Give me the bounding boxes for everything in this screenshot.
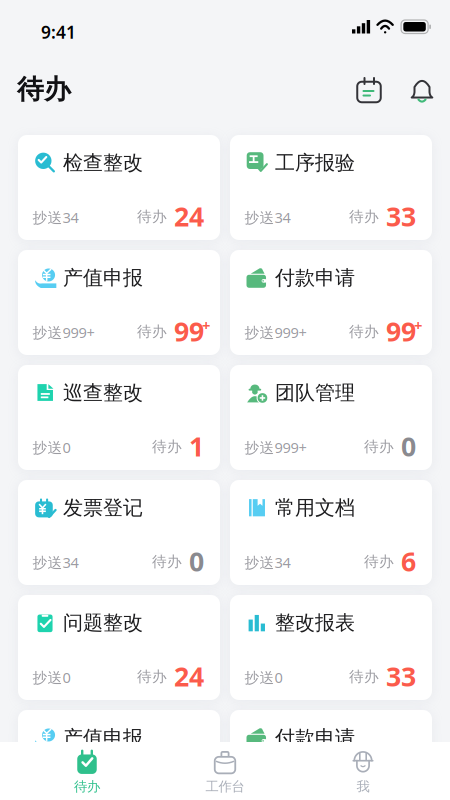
button[interactable]: 产值申报 (18, 710, 220, 800)
staticText: + (202, 775, 210, 795)
staticText: 抄送34 (32, 207, 78, 227)
staticText: 待办 (17, 73, 71, 106)
button[interactable]: 团队管理 (230, 365, 432, 470)
staticText: 1 (189, 428, 204, 464)
staticText: 待办 (137, 322, 167, 340)
staticText: 待办 (152, 552, 182, 570)
staticText: + (414, 315, 422, 335)
staticText: 巡查整改 (63, 380, 143, 405)
staticText: 团队管理 (275, 380, 355, 405)
staticText: 工作台 (205, 778, 244, 795)
staticText: 抄送34 (32, 552, 78, 572)
staticText: 检查整改 (63, 150, 143, 175)
button[interactable]: 通知 (405, 73, 439, 107)
staticText: 33 (386, 658, 416, 694)
button[interactable]: 发票登记 (18, 480, 220, 585)
button[interactable]: 付款申请 (230, 710, 432, 800)
staticText: 抄送0 (32, 437, 70, 457)
staticText: 待办 (349, 322, 379, 340)
button[interactable]: 待办 (18, 742, 156, 800)
staticText: 抄送34 (244, 552, 290, 572)
staticText: 整改报表 (275, 610, 355, 635)
staticText: 99 (174, 313, 204, 349)
button[interactable]: 检查整改 (18, 135, 220, 240)
button[interactable]: 问题整改 (18, 595, 220, 700)
staticText: 抄送34 (244, 207, 290, 227)
staticText: + (202, 315, 210, 335)
staticText: 发票登记 (63, 495, 143, 520)
staticText: 33 (386, 198, 416, 234)
staticText: 待办 (152, 437, 182, 455)
staticText: 待办 (74, 778, 100, 795)
staticText: 工序报验 (275, 150, 355, 175)
button[interactable]: 产值申报 (18, 250, 220, 355)
staticText: 待办 (364, 437, 394, 455)
staticText: 付款申请 (275, 725, 355, 750)
button[interactable]: 巡查整改 (18, 365, 220, 470)
staticText: 产值申报 (63, 265, 143, 290)
staticText: 抄送999+ (244, 322, 306, 342)
button[interactable]: 付款申请 (230, 250, 432, 355)
staticText: 抄送0 (32, 667, 70, 687)
staticText: 抄送0 (244, 667, 282, 687)
staticText: 待办 (364, 552, 394, 570)
button[interactable]: 整改报表 (230, 595, 432, 700)
button[interactable]: 工序报验 (230, 135, 432, 240)
staticText: 待办 (349, 782, 379, 800)
staticText: 我 (356, 778, 369, 795)
staticText: 待办 (349, 207, 379, 225)
staticText: 抄送999+ (244, 437, 306, 457)
staticText: 问题整改 (63, 610, 143, 635)
button[interactable]: 我 (294, 742, 432, 800)
button[interactable]: 日程 (352, 73, 386, 107)
staticText: 99 (386, 313, 416, 349)
staticText: 常用文档 (275, 495, 355, 520)
staticText: 9:41 (41, 20, 76, 43)
staticText: 待办 (349, 667, 379, 685)
staticText: 付款申请 (275, 265, 355, 290)
staticText: 抄送999+ (32, 782, 94, 800)
staticText: 待办 (137, 207, 167, 225)
staticText: 0 (401, 428, 416, 464)
staticText: 24 (174, 198, 204, 234)
button[interactable]: 常用文档 (230, 480, 432, 585)
staticText: 产值申报 (63, 725, 143, 750)
button[interactable]: 工作台 (156, 742, 294, 800)
staticText: 抄送999+ (32, 322, 94, 342)
staticText: 0 (189, 543, 204, 579)
staticText: 24 (174, 658, 204, 694)
staticText: 6 (401, 543, 416, 579)
staticText: 待办 (137, 667, 167, 685)
